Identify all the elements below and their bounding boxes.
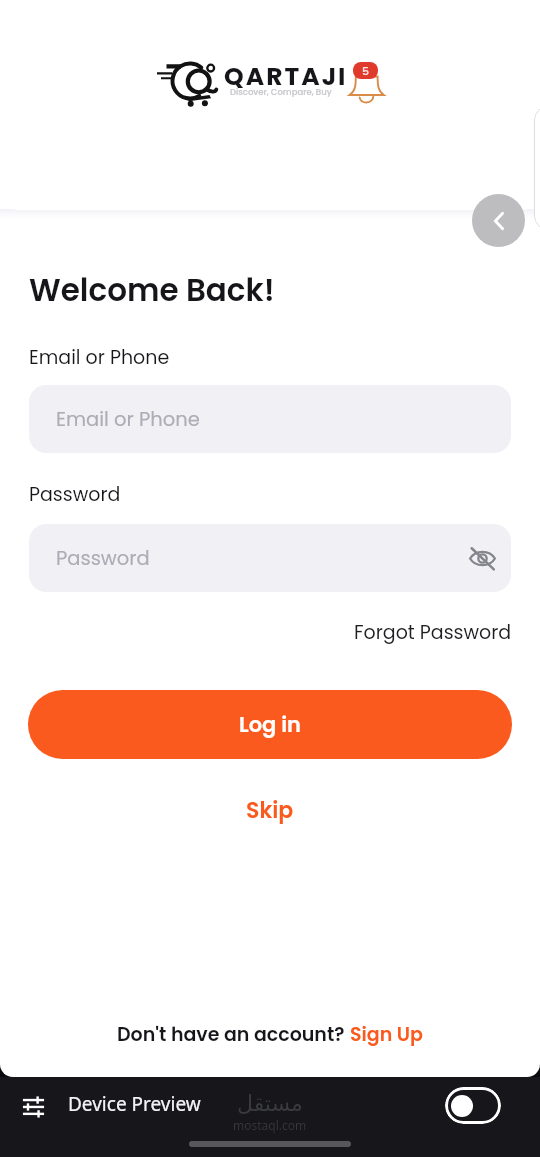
button[interactable]: Log in xyxy=(28,690,512,759)
staticText: Don't have an account? xyxy=(117,1021,350,1048)
staticText: Log in xyxy=(239,710,301,739)
button[interactable]: Back xyxy=(472,194,525,247)
staticText: 5 xyxy=(362,63,370,78)
staticText: Skip xyxy=(246,795,294,826)
button[interactable]: Device Preview xyxy=(68,1091,201,1117)
button[interactable]: Password xyxy=(29,524,511,592)
staticText: Email or Phone xyxy=(29,344,170,371)
staticText: Discover, Compare, Buy xyxy=(230,86,332,98)
staticText: mostaql.com xyxy=(233,1117,307,1133)
button[interactable]: Forgot Password xyxy=(354,619,512,646)
staticText: QARTAJI xyxy=(224,59,348,94)
staticText: مستقل xyxy=(237,1091,303,1117)
staticText: Password xyxy=(56,545,150,572)
button[interactable]: Preview settings xyxy=(20,1093,47,1120)
staticText: Forgot Password xyxy=(354,619,512,646)
button[interactable]: Don't have an account? xyxy=(117,1021,423,1048)
staticText: Welcome Back! xyxy=(29,268,275,311)
staticText: Email or Phone xyxy=(56,406,200,433)
staticText: Sign Up xyxy=(350,1021,423,1048)
staticText: Device Preview xyxy=(68,1091,201,1117)
button[interactable]: Email or Phone xyxy=(29,385,511,453)
button[interactable]: Show password xyxy=(462,538,502,578)
staticText: Password xyxy=(29,481,121,508)
button[interactable]: Toggle device preview xyxy=(445,1087,501,1124)
button[interactable]: Skip xyxy=(230,787,310,834)
